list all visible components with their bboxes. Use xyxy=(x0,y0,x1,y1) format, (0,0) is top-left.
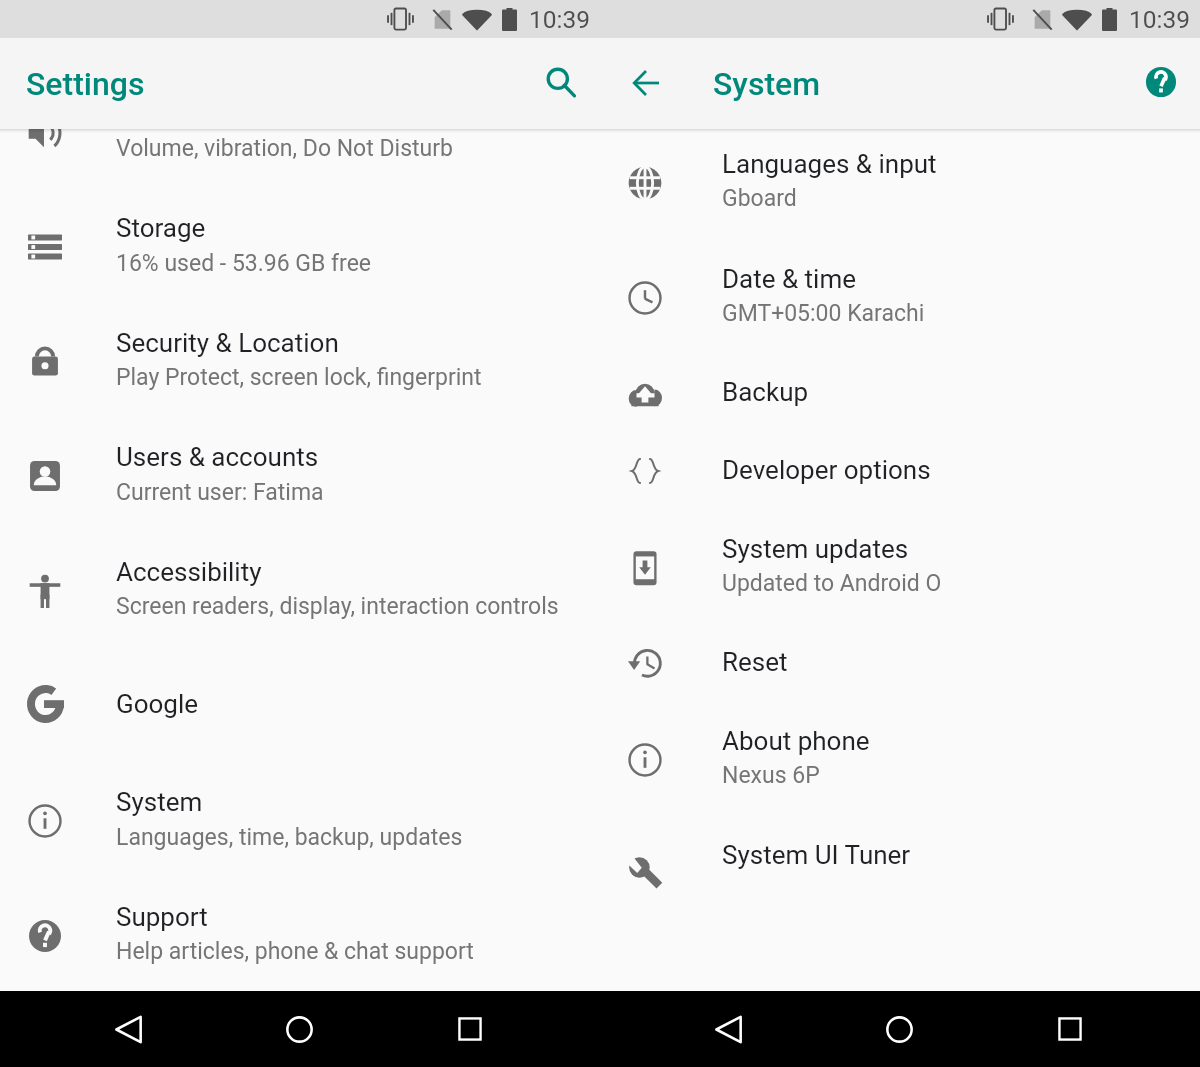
staticText: Languages & input xyxy=(722,149,937,179)
staticText: Settings xyxy=(26,65,145,103)
button[interactable] xyxy=(600,125,1200,240)
button[interactable] xyxy=(600,817,1200,895)
button[interactable]: Recents xyxy=(440,999,500,1059)
button[interactable]: Back xyxy=(98,999,158,1059)
button[interactable] xyxy=(600,702,1200,817)
staticText: System xyxy=(116,787,203,817)
button[interactable] xyxy=(600,355,1200,432)
staticText: Google xyxy=(116,689,199,719)
button[interactable] xyxy=(0,648,600,764)
staticText: System updates xyxy=(722,534,909,564)
button[interactable]: Home xyxy=(869,999,929,1059)
staticText: System UI Tuner xyxy=(722,840,911,870)
button[interactable] xyxy=(0,419,600,534)
staticText: Users & accounts xyxy=(116,442,319,472)
button[interactable]: Back xyxy=(698,999,758,1059)
button[interactable] xyxy=(600,432,1200,510)
staticText: Nexus 6P xyxy=(722,762,820,789)
staticText: Updated to Android O xyxy=(722,570,942,597)
staticText: Date & time xyxy=(722,264,856,294)
button[interactable] xyxy=(600,240,1200,355)
button[interactable]: Back xyxy=(616,59,676,107)
staticText: Volume, vibration, Do Not Disturb xyxy=(116,135,453,162)
staticText: Security & Location xyxy=(116,328,339,358)
staticText: 10:39 xyxy=(529,5,591,34)
button[interactable]: Help xyxy=(1132,53,1190,111)
staticText: Developer options xyxy=(722,455,931,485)
button[interactable] xyxy=(0,304,600,419)
staticText: System xyxy=(713,65,821,103)
staticText: Sound xyxy=(116,99,190,129)
staticText: Screen readers, display, interaction con… xyxy=(116,593,559,620)
button[interactable] xyxy=(600,510,1200,625)
staticText: Storage xyxy=(116,213,206,243)
button[interactable] xyxy=(0,75,600,190)
staticText: Gboard xyxy=(722,185,797,212)
button[interactable] xyxy=(0,533,600,648)
button[interactable] xyxy=(0,190,600,305)
button[interactable] xyxy=(0,764,600,879)
button[interactable]: Recents xyxy=(1040,999,1100,1059)
button[interactable]: Search xyxy=(531,53,591,113)
staticText: Backup xyxy=(722,377,809,407)
button[interactable] xyxy=(0,878,600,993)
button[interactable]: Home xyxy=(269,999,329,1059)
staticText: Play Protect, screen lock, fingerprint xyxy=(116,364,482,391)
staticText: About phone xyxy=(722,726,870,756)
staticText: Current user: Fatima xyxy=(116,479,324,506)
staticText: Languages, time, backup, updates xyxy=(116,824,463,851)
staticText: Reset xyxy=(722,647,788,677)
staticText: 10:39 xyxy=(1129,5,1191,34)
button[interactable] xyxy=(600,625,1200,702)
staticText: Help articles, phone & chat support xyxy=(116,938,474,965)
staticText: Accessibility xyxy=(116,557,262,587)
staticText: GMT+05:00 Karachi xyxy=(722,300,925,327)
staticText: 16% used - 53.96 GB free xyxy=(116,250,372,277)
staticText: Support xyxy=(116,902,208,932)
